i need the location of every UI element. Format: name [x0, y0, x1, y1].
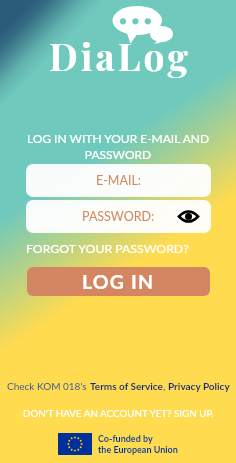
button[interactable]: Privacy Policy [168, 380, 230, 392]
staticText: , [163, 380, 168, 392]
button[interactable]: LOG IN [27, 267, 210, 296]
button[interactable]: FORGOT YOUR PASSWORD? [26, 241, 211, 256]
button[interactable]: E-MAIL: [29, 167, 208, 194]
staticText: the European Union [98, 444, 178, 455]
button[interactable]: Terms of Service [90, 380, 163, 392]
button[interactable]: PASSWORD: [29, 203, 208, 230]
button[interactable]: DON'T HAVE AN ACCOUNT YET? SIGN UP. [23, 407, 214, 419]
staticText: FORGOT YOUR PASSWORD? [26, 241, 189, 256]
staticText: LOG IN [82, 270, 155, 293]
staticText: Check KOM 018's [7, 380, 90, 392]
staticText: E-MAIL: [96, 173, 141, 188]
staticText: PASSWORD: [82, 209, 155, 224]
staticText: DON'T HAVE AN ACCOUNT YET? SIGN UP. [23, 407, 214, 419]
staticText: DiaLog [49, 31, 192, 80]
other: Show password [179, 210, 198, 223]
staticText: Co-funded by [98, 433, 153, 444]
staticText: LOG IN WITH YOUR E-MAIL AND PASSWORD [25, 131, 211, 161]
